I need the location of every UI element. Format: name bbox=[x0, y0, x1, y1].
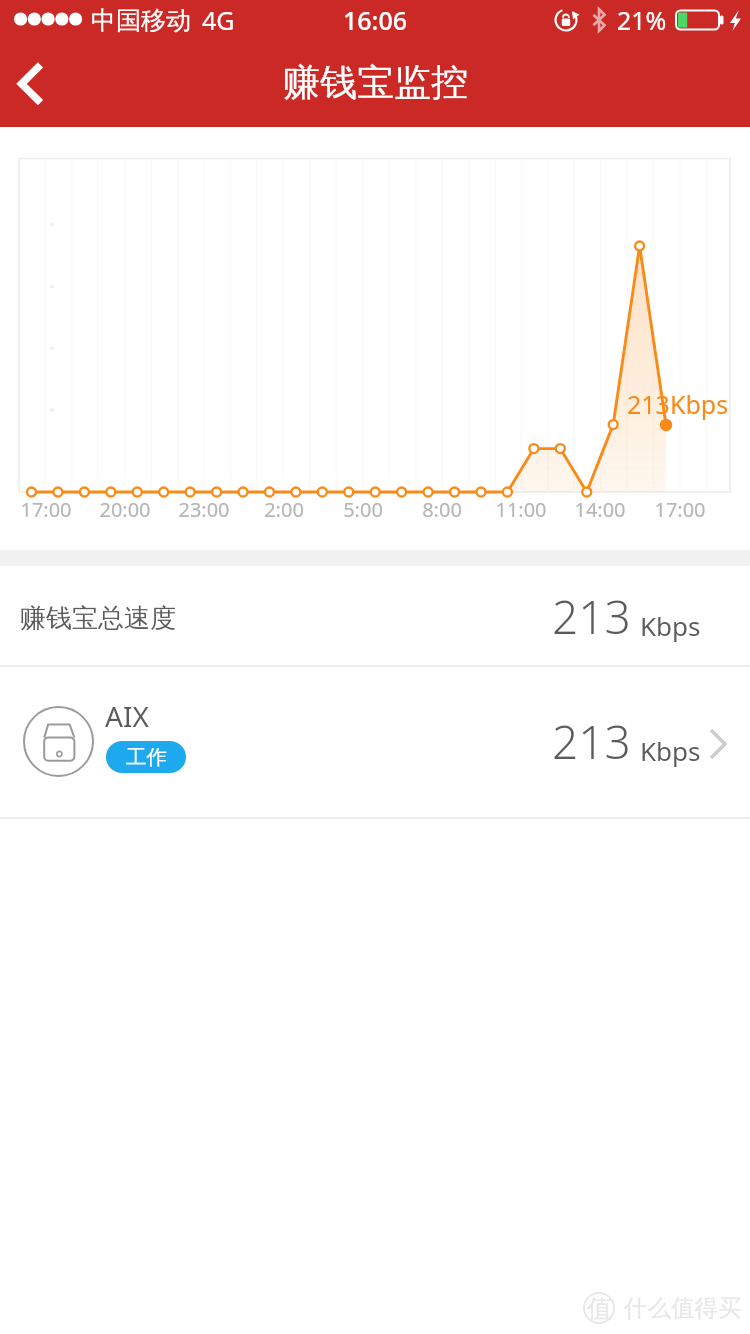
staticText: Kbps bbox=[640, 608, 701, 643]
staticText: 赚钱宝总速度 bbox=[20, 602, 176, 635]
staticText: 23:00 bbox=[154, 496, 254, 523]
staticText: 17:00 bbox=[0, 496, 96, 523]
button[interactable]: Back bbox=[0, 40, 66, 127]
staticText: 值 bbox=[587, 1293, 612, 1324]
staticText: 什么值得买 bbox=[624, 1293, 742, 1323]
staticText: 中国移动 bbox=[91, 5, 191, 36]
button[interactable]: AIX bbox=[0, 668, 750, 819]
staticText: 工作 bbox=[126, 744, 167, 770]
staticText: Kbps bbox=[640, 733, 701, 768]
staticText: 8:00 bbox=[392, 496, 492, 523]
staticText: AIX bbox=[105, 697, 149, 735]
other: Open device bbox=[708, 727, 728, 761]
staticText: 5:00 bbox=[313, 496, 413, 523]
staticText: 14:00 bbox=[550, 496, 650, 523]
staticText: 213 bbox=[552, 585, 631, 648]
staticText: 16:06 bbox=[343, 3, 408, 37]
staticText: 17:00 bbox=[630, 496, 730, 523]
button[interactable]: 工作 bbox=[106, 741, 186, 773]
staticText: 213 bbox=[552, 710, 631, 773]
staticText: 2:00 bbox=[234, 496, 334, 523]
staticText: 20:00 bbox=[75, 496, 175, 523]
staticText: 21% bbox=[617, 3, 667, 37]
staticText: 11:00 bbox=[471, 496, 571, 523]
staticText: 4G bbox=[202, 3, 235, 37]
staticText: 赚钱宝监控 bbox=[283, 59, 468, 106]
staticText: 213Kbps bbox=[627, 387, 729, 421]
button[interactable]: 赚钱宝总速度 bbox=[0, 566, 750, 667]
